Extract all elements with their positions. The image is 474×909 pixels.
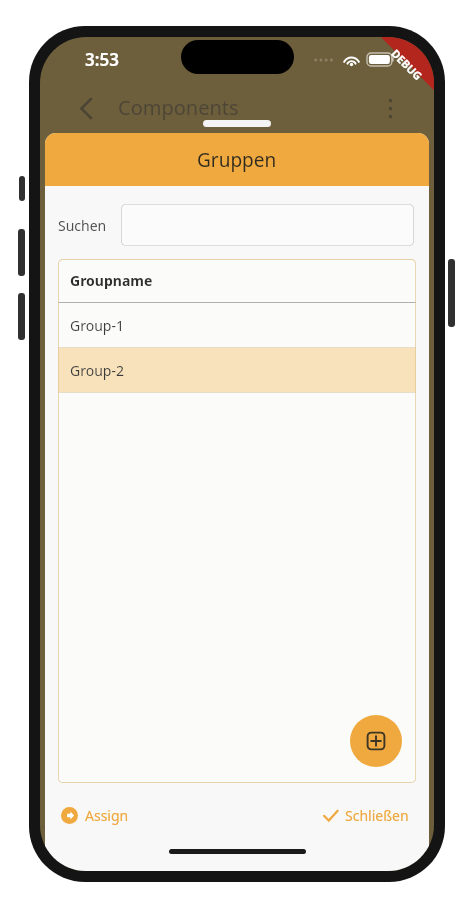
button[interactable]: More options (370, 88, 410, 128)
button[interactable]: Back (66, 88, 106, 128)
staticText: Gruppen (197, 147, 277, 173)
staticText: Group-1 (70, 316, 124, 335)
button[interactable]: Schließen (320, 801, 411, 830)
staticText: DEBUG (388, 46, 426, 83)
staticText: Groupname (70, 271, 153, 290)
button[interactable]: Group-2 (58, 348, 416, 392)
button[interactable]: Assign (59, 801, 131, 830)
button[interactable] (121, 204, 414, 246)
staticText: 3:53 (85, 48, 119, 71)
button[interactable]: Add group (350, 715, 402, 767)
staticText: Assign (85, 806, 129, 825)
staticText: Schließen (345, 806, 409, 825)
staticText: Components (118, 94, 239, 121)
staticText: Suchen (58, 216, 107, 235)
staticText: Group-2 (70, 361, 124, 380)
button[interactable]: Group-1 (58, 303, 416, 347)
